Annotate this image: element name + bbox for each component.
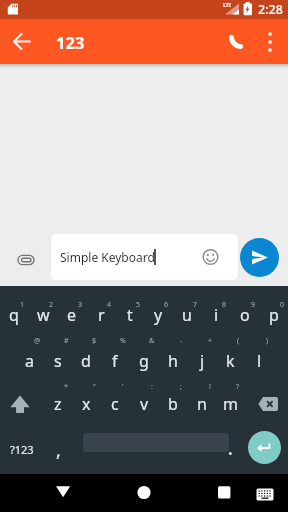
button[interactable]: v: [130, 390, 158, 418]
button[interactable]: w: [29, 301, 57, 329]
staticText: ;: [180, 382, 182, 392]
button[interactable]: 6: [152, 291, 180, 319]
button[interactable]: [128, 474, 160, 512]
staticText: ?123: [10, 442, 34, 457]
button[interactable]: n: [188, 390, 216, 418]
staticText: k: [226, 350, 235, 372]
button[interactable]: ?123: [8, 435, 36, 463]
button[interactable]: !: [196, 373, 224, 401]
staticText: g: [139, 350, 149, 372]
staticText: 2:28: [258, 1, 283, 18]
button[interactable]: [240, 238, 279, 277]
button[interactable]: 3: [66, 291, 94, 319]
button[interactable]: d: [72, 347, 100, 375]
button[interactable]: [10, 244, 42, 276]
staticText: ): [266, 336, 269, 346]
button[interactable]: [252, 474, 282, 512]
button[interactable]: x: [72, 390, 100, 418]
button[interactable]: [248, 382, 288, 424]
button[interactable]: [220, 26, 251, 57]
button[interactable]: %: [109, 327, 137, 355]
button[interactable]: 0: [268, 291, 288, 319]
staticText: %: [120, 336, 126, 346]
button[interactable]: z: [44, 390, 72, 418]
button[interactable]: *: [52, 373, 80, 401]
staticText: 2: [49, 300, 54, 310]
staticText: 123: [56, 31, 85, 53]
button[interactable]: u: [173, 301, 201, 329]
button[interactable]: g: [130, 347, 158, 375]
button[interactable]: ;: [167, 373, 195, 401]
button[interactable]: ,: [44, 436, 72, 464]
button[interactable]: ?: [224, 373, 252, 401]
button[interactable]: j: [188, 347, 216, 375]
button[interactable]: k: [216, 347, 244, 375]
button[interactable]: &: [138, 327, 166, 355]
button[interactable]: Simple Keyboard: [51, 234, 238, 280]
button[interactable]: m: [216, 390, 244, 418]
button[interactable]: 7: [181, 291, 209, 319]
button[interactable]: p: [260, 301, 288, 329]
staticText: 0: [280, 300, 285, 310]
button[interactable]: [222, 437, 239, 467]
button[interactable]: o: [231, 301, 259, 329]
button[interactable]: 4: [95, 291, 123, 319]
button[interactable]: $: [80, 327, 108, 355]
staticText: ': [122, 382, 124, 392]
button[interactable]: #: [52, 327, 80, 355]
staticText: t: [127, 304, 133, 326]
staticText: $: [92, 336, 97, 346]
staticText: p: [269, 304, 279, 326]
button[interactable]: [0, 382, 40, 424]
button[interactable]: c: [101, 390, 129, 418]
staticText: b: [168, 393, 178, 415]
staticText: e: [67, 304, 77, 326]
button[interactable]: s: [44, 347, 72, 375]
button[interactable]: +: [196, 327, 224, 355]
staticText: 5: [136, 300, 141, 310]
staticText: 7: [193, 300, 198, 310]
button[interactable]: 5: [124, 291, 152, 319]
button[interactable]: ): [253, 327, 281, 355]
button[interactable]: (: [224, 327, 252, 355]
staticText: u: [182, 304, 192, 326]
staticText: n: [197, 393, 207, 415]
button[interactable]: b: [159, 390, 187, 418]
button[interactable]: 8: [210, 291, 238, 319]
button[interactable]: :: [138, 373, 166, 401]
staticText: 1: [20, 300, 25, 310]
button[interactable]: -: [167, 327, 195, 355]
staticText: +: [208, 336, 213, 346]
staticText: 8: [222, 300, 227, 310]
staticText: h: [168, 350, 178, 372]
button[interactable]: 1: [8, 291, 36, 319]
button[interactable]: l: [245, 347, 273, 375]
button[interactable]: 9: [239, 291, 267, 319]
button[interactable]: y: [144, 301, 172, 329]
staticText: 6: [164, 300, 169, 310]
staticText: 3: [78, 300, 83, 310]
staticText: y: [154, 304, 163, 326]
button[interactable]: i: [202, 301, 230, 329]
button[interactable]: @: [23, 327, 51, 355]
staticText: o: [240, 304, 250, 326]
button[interactable]: t: [116, 301, 144, 329]
button[interactable]: [6, 25, 38, 57]
button[interactable]: ': [109, 373, 137, 401]
button[interactable]: [47, 474, 79, 512]
button[interactable]: 2: [37, 291, 65, 319]
button[interactable]: q: [0, 301, 28, 329]
staticText: i: [214, 304, 219, 326]
staticText: l: [257, 350, 262, 372]
button[interactable]: r: [87, 301, 115, 329]
staticText: r: [98, 304, 105, 326]
button[interactable]: e: [58, 301, 86, 329]
button[interactable]: [258, 26, 282, 57]
button[interactable]: f: [101, 347, 129, 375]
button[interactable]: a: [15, 347, 43, 375]
button[interactable]: [208, 474, 240, 512]
button[interactable]: ": [80, 373, 108, 401]
button[interactable]: [248, 431, 281, 464]
button[interactable]: h: [159, 347, 187, 375]
